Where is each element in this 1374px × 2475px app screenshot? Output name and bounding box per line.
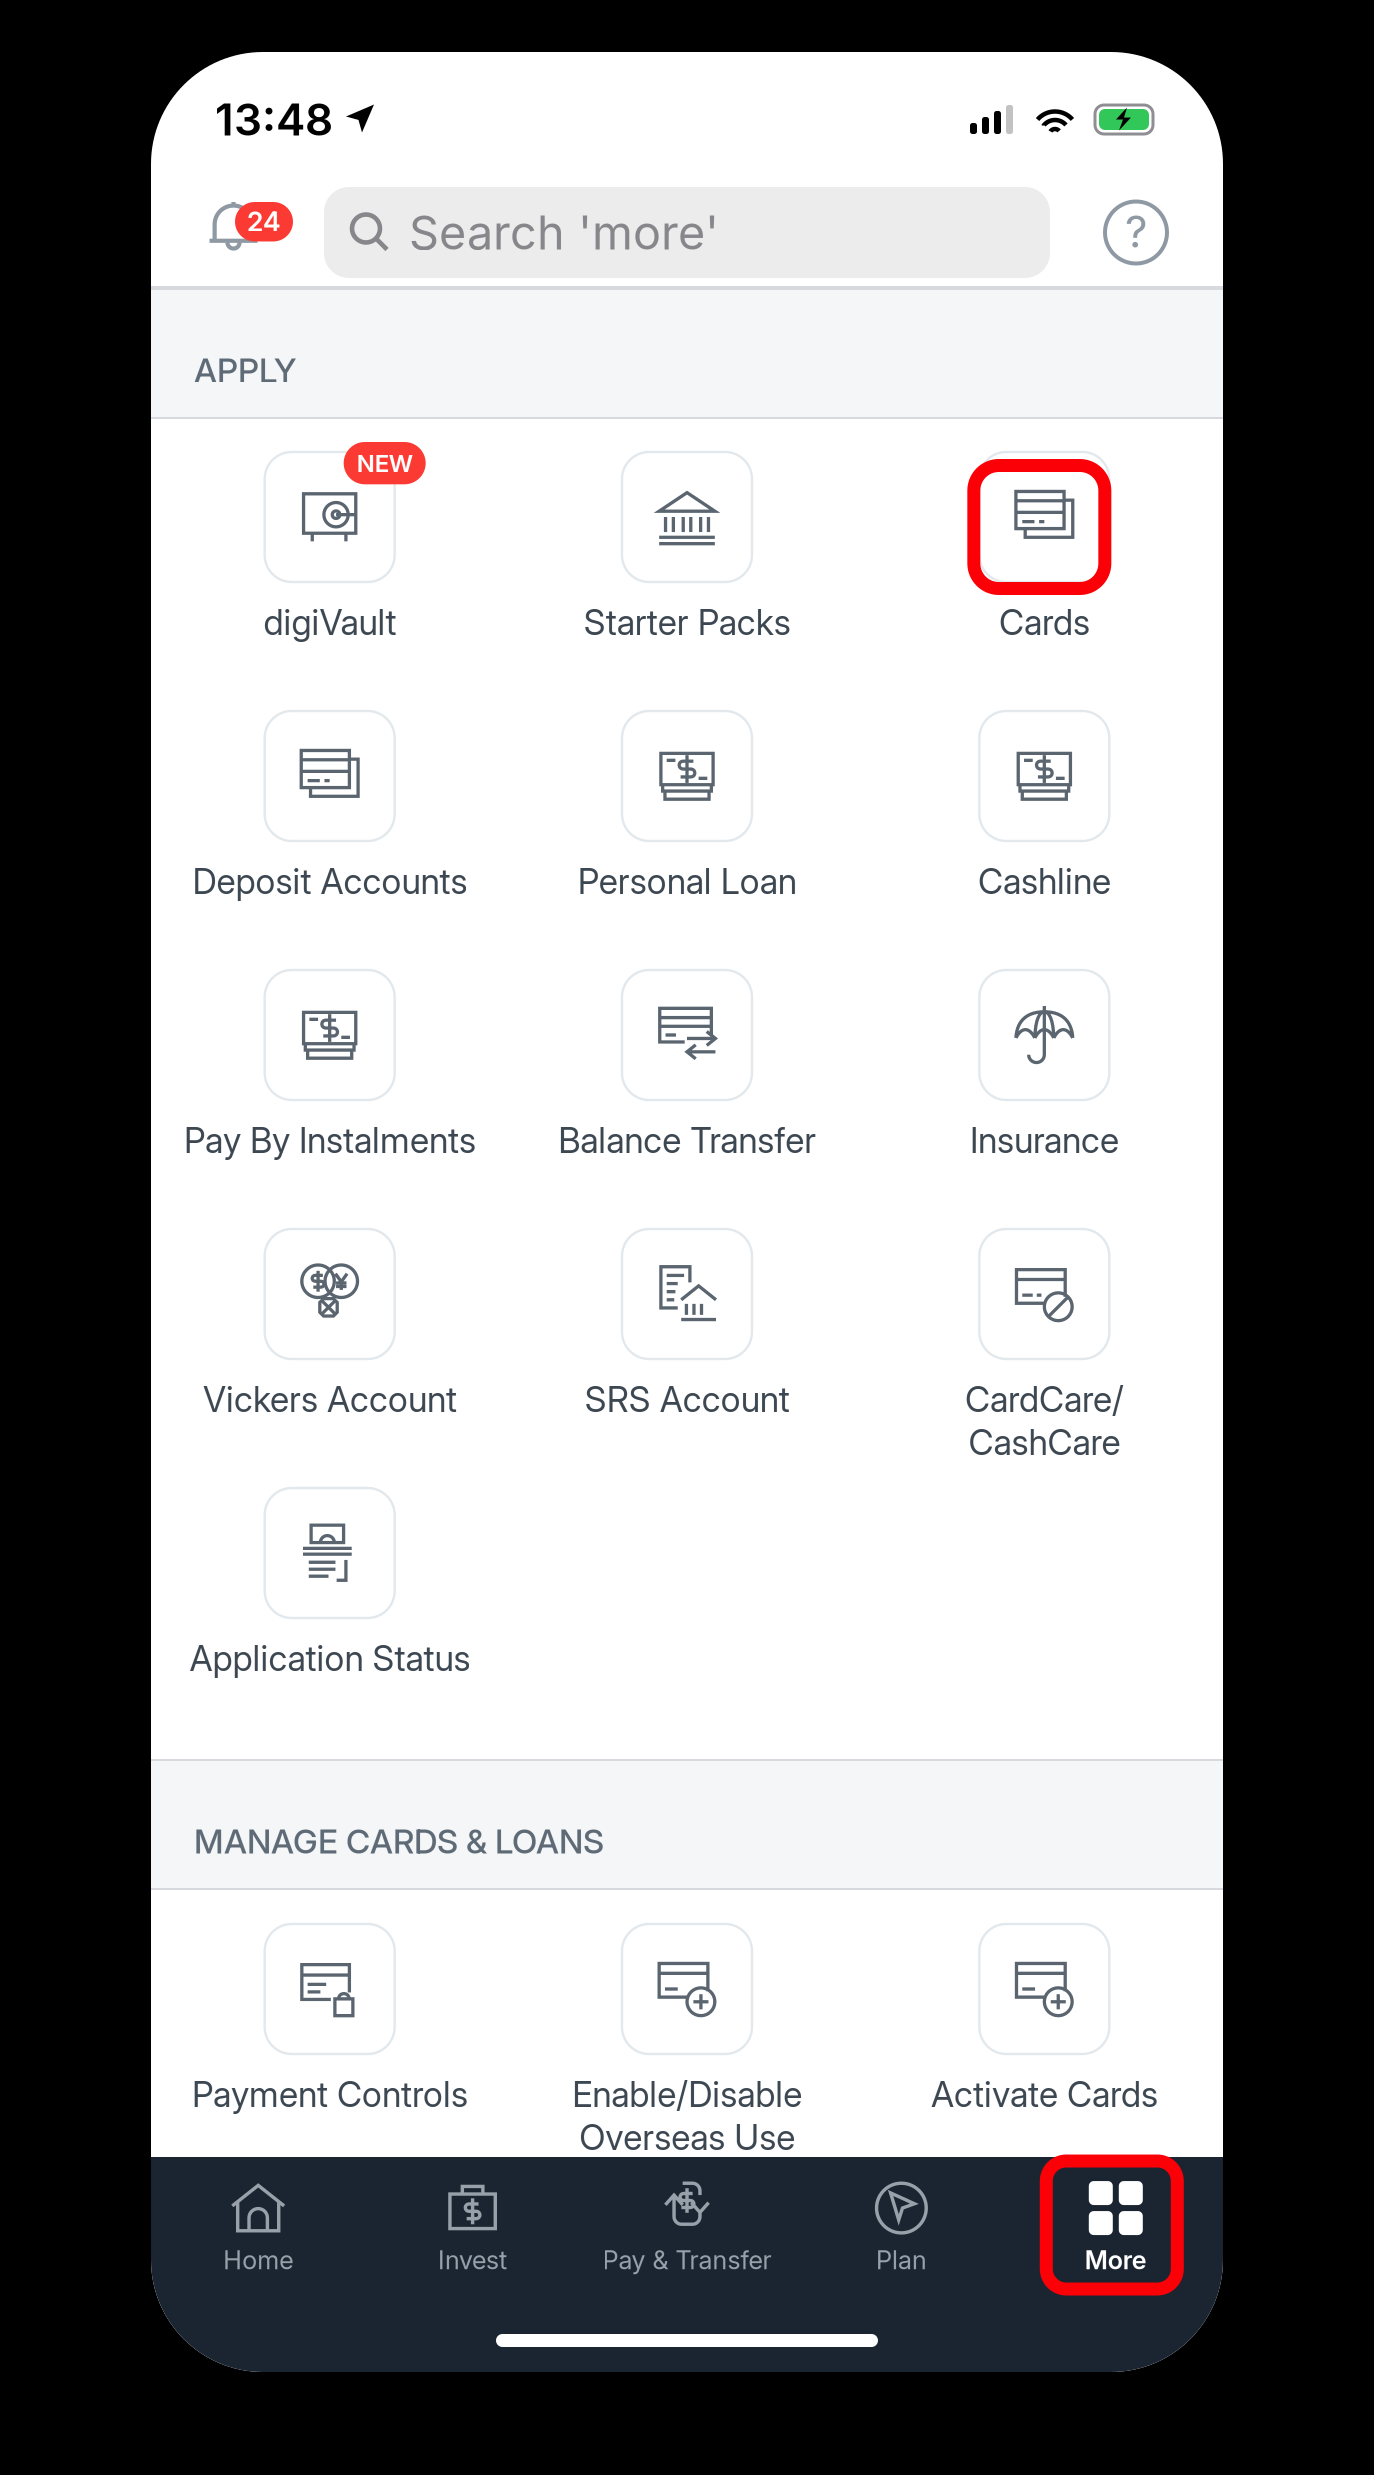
button[interactable]: NEW [151,452,508,711]
staticText: ? [1125,205,1147,257]
staticText: MANAGE CARDS & LOANS [194,1822,604,1861]
button[interactable]: Enable/Disable Overseas Use [508,1924,866,2183]
staticText: More [1085,2245,1147,2275]
staticText: Deposit Accounts [192,861,467,902]
staticText: Search 'more' [409,205,719,260]
button[interactable]: CardCare/ CashCare [866,1229,1223,1488]
staticText: Invest [438,2245,507,2275]
staticText: Personal Loan [577,861,796,902]
staticText: Enable/Disable Overseas Use [572,2074,802,2158]
staticText: Insurance [970,1120,1119,1161]
staticText: digiVault [263,602,396,643]
staticText: Pay By Instalments [184,1120,476,1161]
staticText: SRS Account [584,1379,789,1420]
staticText: Cashline [978,861,1111,902]
staticText: Starter Packs [583,602,790,643]
button[interactable]: Payment Controls [151,1924,508,2183]
staticText: CardCare/ CashCare [965,1379,1124,1463]
button[interactable]: Cards [866,452,1223,711]
staticText: Payment Controls [192,2074,468,2115]
staticText: Plan [876,2245,927,2275]
button[interactable]: Balance Transfer [508,970,866,1229]
staticText: Application Status [189,1638,470,1679]
staticText: Vickers Account [203,1379,457,1420]
button[interactable]: Pay By Instalments [151,970,508,1229]
button[interactable]: Pay & Transfer [580,2157,794,2299]
staticText: 24 [247,206,281,237]
button[interactable]: Home [151,2157,365,2299]
button[interactable]: Application Status [151,1488,508,1747]
button[interactable]: Activate Cards [866,1924,1223,2183]
staticText: 13:48 [215,93,333,145]
button[interactable]: Search 'more' [324,187,1050,278]
button[interactable]: Help [1091,187,1181,278]
button[interactable]: Vickers Account [151,1229,508,1488]
staticText: Cards [999,602,1090,643]
staticText: Home [223,2245,293,2275]
staticText: Pay & Transfer [602,2245,771,2275]
button[interactable]: Notifications [179,187,324,278]
button[interactable]: More [1009,2157,1223,2299]
button[interactable]: Deposit Accounts [151,711,508,970]
button[interactable]: Personal Loan [508,711,866,970]
button[interactable]: Starter Packs [508,452,866,711]
button[interactable]: Cashline [866,711,1223,970]
staticText: Balance Transfer [558,1120,816,1161]
staticText: NEW [357,449,413,477]
button[interactable]: SRS Account [508,1229,866,1488]
staticText: APPLY [194,351,296,390]
button[interactable]: Plan [794,2157,1009,2299]
staticText: Activate Cards [931,2074,1158,2115]
button[interactable]: Insurance [866,970,1223,1229]
button[interactable]: Invest [365,2157,580,2299]
